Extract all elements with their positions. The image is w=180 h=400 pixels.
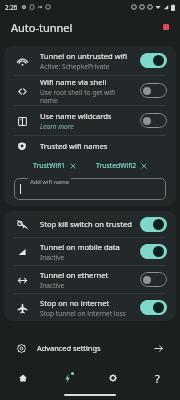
button[interactable]: Wifi name via shell [4,76,176,105]
button[interactable]: Tunnels [45,366,90,390]
staticText: Tunnel on ethernet [40,270,109,280]
button[interactable]: Status indicator [163,24,169,30]
staticText: ? [155,371,160,386]
staticText: 2:26 [5,3,18,11]
button[interactable]: Tunnel on mobile data [140,244,167,259]
staticText: Trusted wifi names [40,141,108,151]
staticText: Tunnel on mobile data [40,242,120,252]
staticText: Tunnel on untrusted wifi [40,51,128,61]
staticText: TrustedWifi2 [96,161,137,170]
staticText: Auto-tunnel [11,20,73,35]
staticText: Use root shell to get wifi name [40,88,134,105]
button[interactable]: Home [0,366,45,390]
other: Remove TrustedWifi2 [141,163,147,169]
staticText: Wifi name via shell [40,77,107,87]
staticText: Active: SchepkePrivate [40,62,110,71]
button[interactable]: TrustWifi1 [30,159,79,172]
button[interactable]: Stop on no internet [4,294,176,321]
button[interactable]: Tunnel on untrusted wifi [4,46,176,75]
button[interactable]: Use name wildcards [4,106,176,135]
button[interactable]: Support [135,366,180,390]
button[interactable]: TrustedWifi2 [93,159,150,172]
staticText: Stop kill switch on trusted [40,219,132,229]
staticText: Inactive [40,253,65,262]
button[interactable]: Tunnel on mobile data [4,238,176,265]
staticText: Stop tunnel on internet loss [40,309,126,318]
button[interactable]: Tunnel on untrusted wifi [140,53,167,68]
button[interactable]: Tunnel on ethernet [4,266,176,293]
button[interactable]: Settings [90,366,135,390]
button[interactable]: Tunnel on ethernet [140,272,167,287]
button[interactable] [14,178,166,200]
button[interactable]: Stop on no internet [140,300,167,315]
staticText: Use name wildcards [40,111,112,121]
button[interactable]: Advanced settings [0,336,180,360]
button[interactable]: Stop kill switch on trusted [140,217,167,232]
staticText: Add wifi name [30,178,69,186]
other: Remove TrustWifi1 [70,163,76,169]
staticText: Inactive [40,281,65,290]
button[interactable]: Use name wildcards [140,113,167,128]
staticText: TrustWifi1 [33,161,66,170]
button[interactable]: Stop kill switch on trusted [4,211,176,237]
button[interactable]: Wifi name via shell [140,83,167,98]
staticText: Advanced settings [37,343,101,353]
staticText: Learn more [40,122,74,131]
button[interactable]: Trusted wifi names [13,136,167,156]
staticText: Stop on no internet [40,298,110,308]
